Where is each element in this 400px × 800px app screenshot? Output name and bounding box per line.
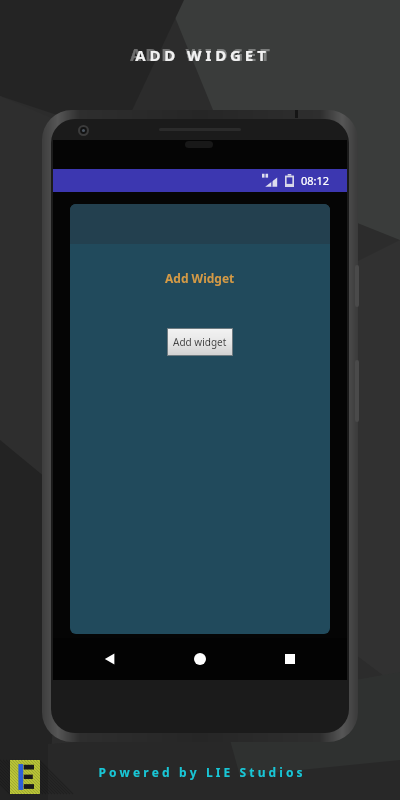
staticText: A D D W I D G E T	[135, 45, 266, 65]
staticText: P o w e r e d b y L I E S t u d i o s	[98, 764, 303, 780]
staticText: Add Widget	[165, 270, 235, 286]
button[interactable]: Back	[100, 649, 120, 669]
button[interactable]: LIE Studios logo	[10, 760, 40, 794]
button[interactable]: Add widget	[168, 329, 232, 355]
staticText: Add widget	[173, 335, 227, 349]
button[interactable]: Home	[190, 649, 210, 669]
staticText: A D D W I D G E T	[130, 44, 270, 66]
button[interactable]: Recents	[280, 649, 300, 669]
staticText: 08:12	[301, 173, 330, 188]
